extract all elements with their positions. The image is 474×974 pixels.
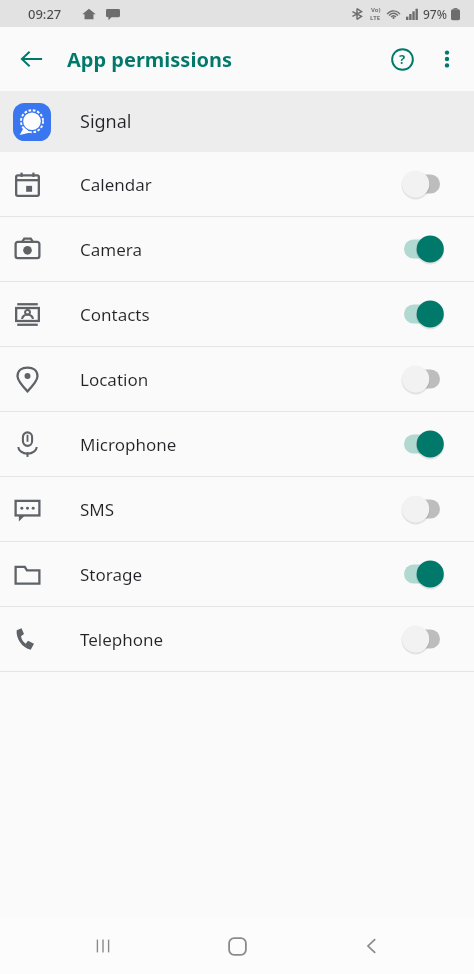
button[interactable]: Telephone [0,607,474,671]
button[interactable]: Contacts permission toggle [404,294,456,334]
staticText: Signal [80,109,132,134]
button[interactable]: Back [8,35,56,83]
button[interactable]: Camera permission toggle [404,229,456,269]
button[interactable]: Help [378,35,426,83]
staticText: Storage [80,563,143,586]
button[interactable]: SMS [0,477,474,541]
button[interactable]: Contacts [0,282,474,346]
staticText: Location [80,368,149,391]
button[interactable]: More options [426,35,468,83]
staticText: Vo) [371,6,381,14]
staticText: Calendar [80,173,152,196]
staticText: Telephone [80,628,164,651]
staticText: 09:27 [28,5,62,23]
staticText: SMS [80,498,115,521]
button[interactable]: Signal [0,91,474,152]
button[interactable]: Recents [71,918,135,974]
button[interactable]: Microphone [0,412,474,476]
button[interactable]: Camera [0,217,474,281]
button[interactable]: Home [205,918,269,974]
staticText: Microphone [80,433,177,456]
button[interactable]: SMS permission toggle [404,489,456,529]
button[interactable]: Back [340,918,404,974]
staticText: LTE [370,14,381,22]
staticText: Contacts [80,303,150,326]
staticText: ? [399,50,406,68]
button[interactable]: Location [0,347,474,411]
button[interactable]: Telephone permission toggle [404,619,456,659]
button[interactable]: Storage [0,542,474,606]
button[interactable]: Calendar [0,152,474,216]
button[interactable]: Storage permission toggle [404,554,456,594]
staticText: Camera [80,238,142,261]
button[interactable]: Microphone permission toggle [404,424,456,464]
staticText: App permissions [67,46,232,73]
button[interactable]: Calendar permission toggle [404,164,456,204]
staticText: 97% [423,6,447,22]
button[interactable]: Location permission toggle [404,359,456,399]
